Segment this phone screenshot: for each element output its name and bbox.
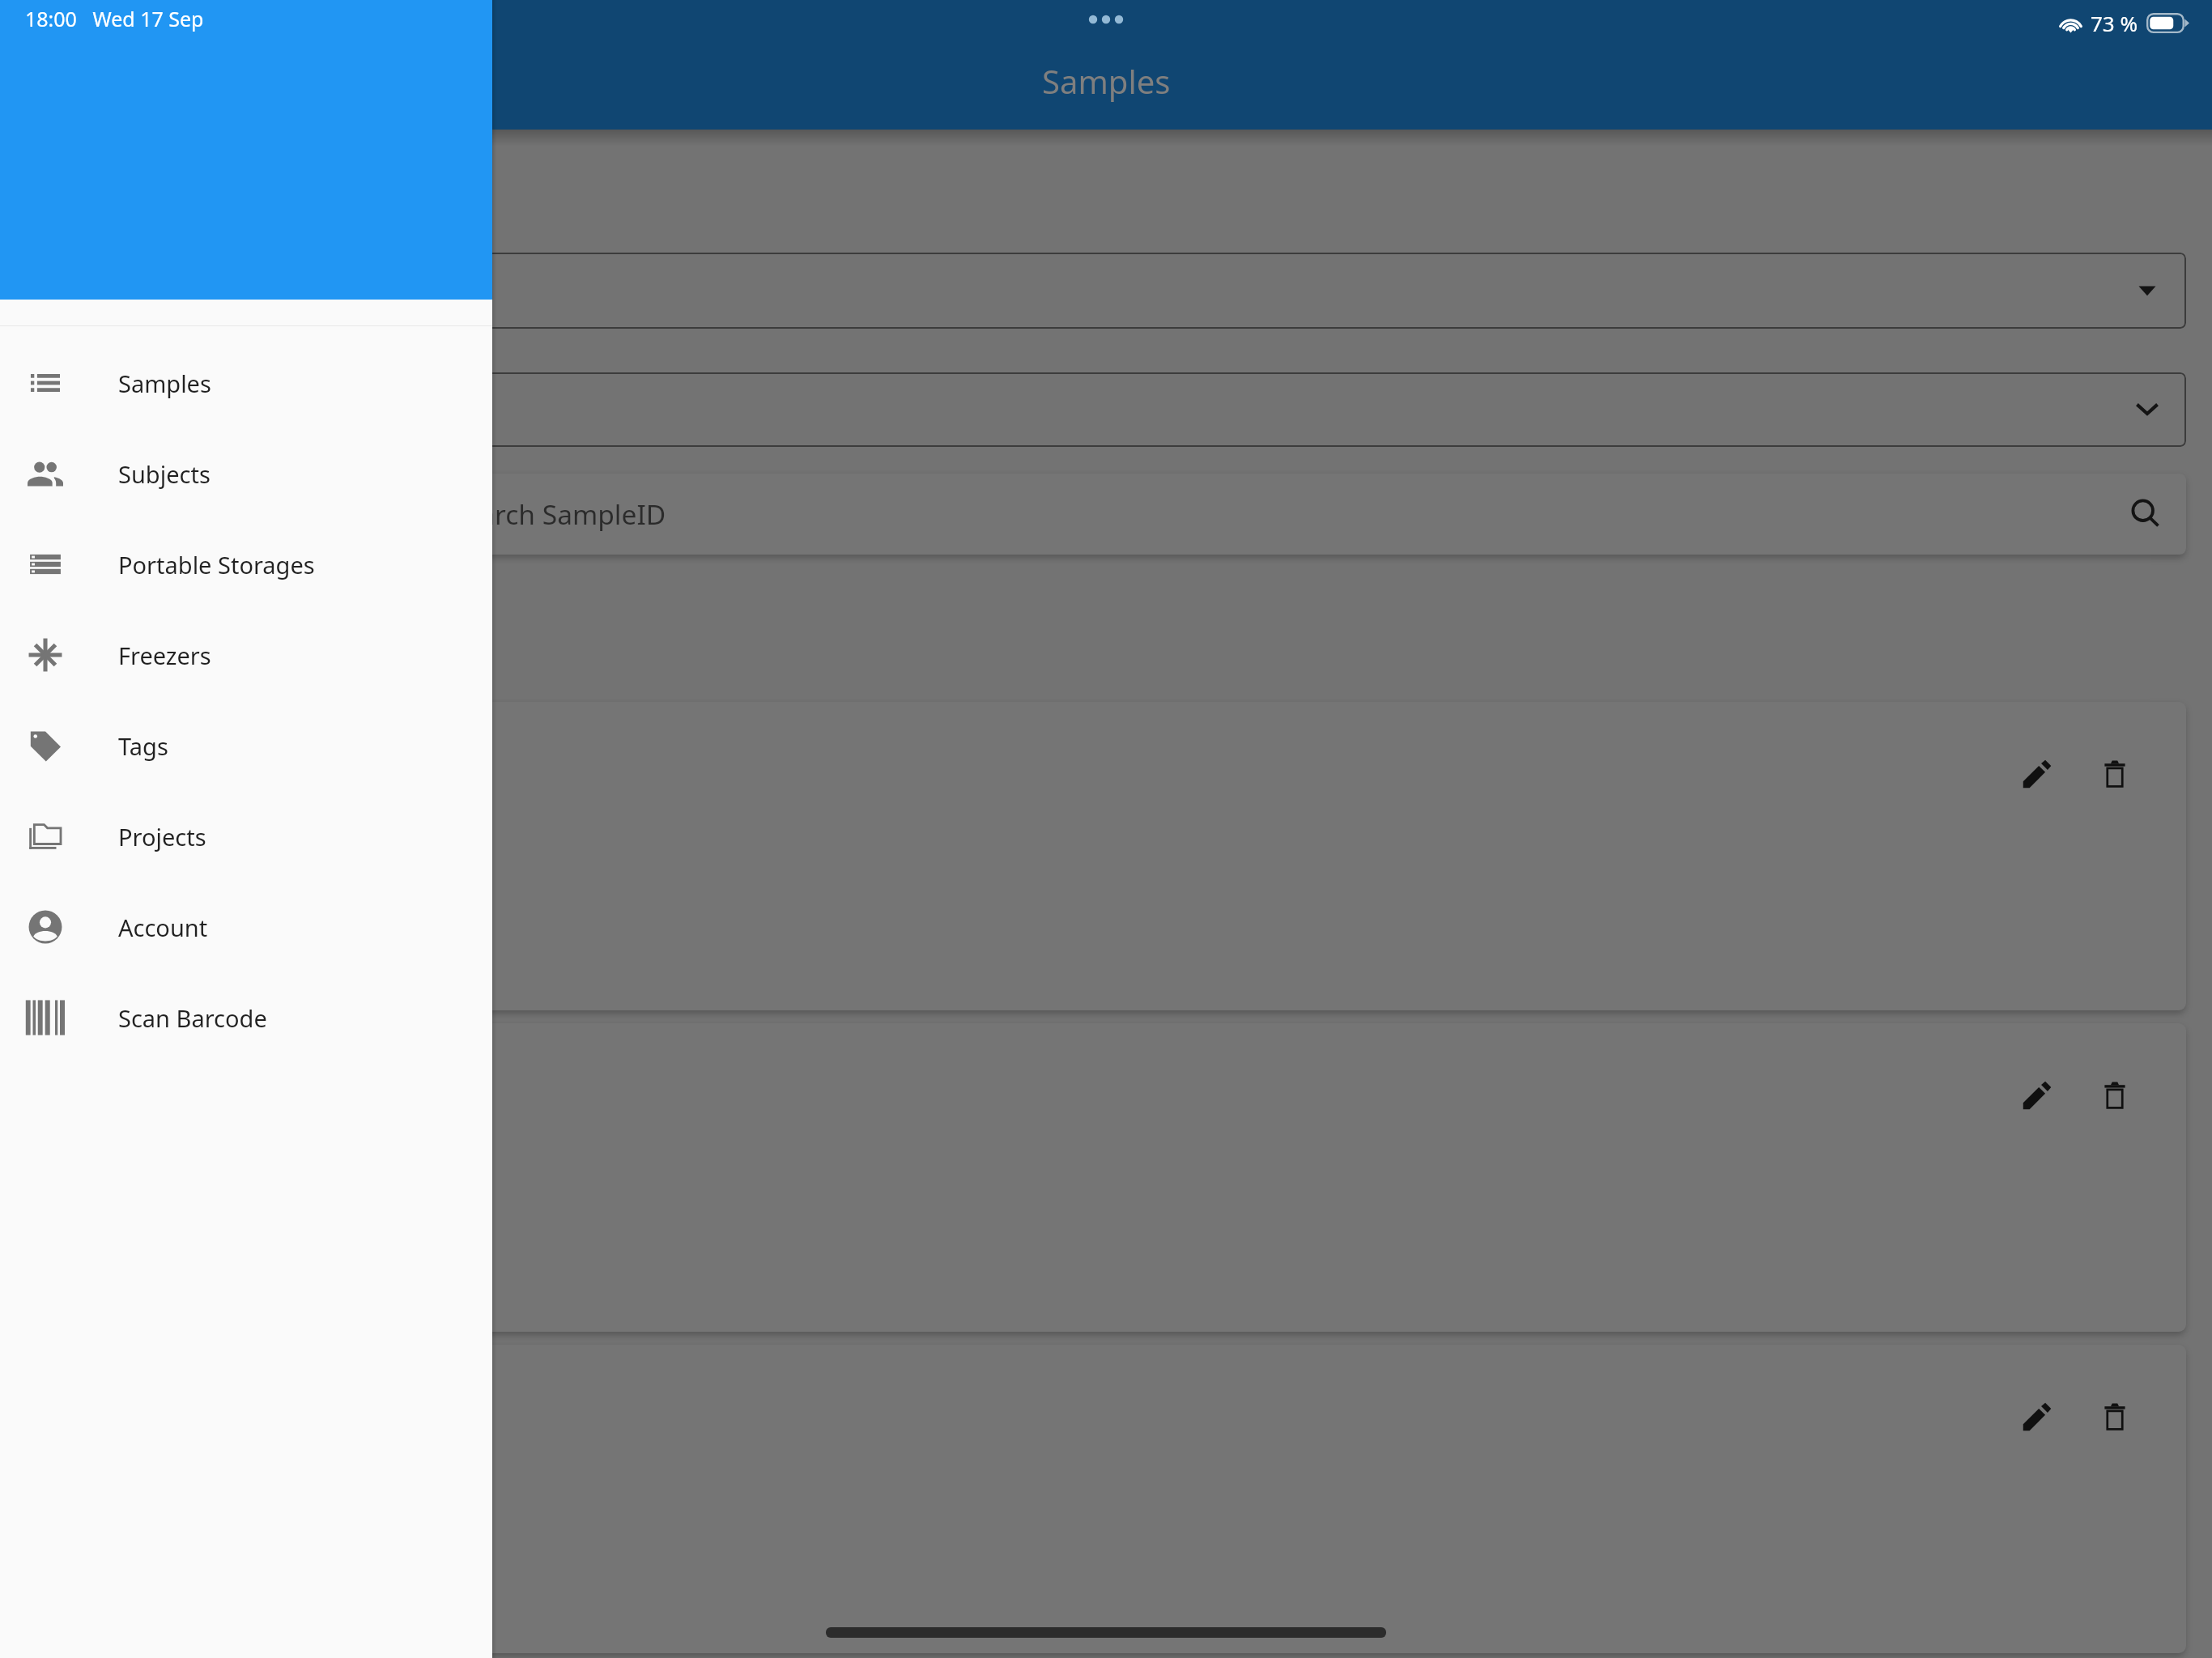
button[interactable]: Tags — [0, 700, 492, 791]
button[interactable]: Sample — [26, 702, 2186, 1010]
staticText: Subjects — [118, 458, 211, 490]
button[interactable]: Edit — [2011, 1391, 2063, 1443]
staticText: Scan Barcode — [118, 1002, 267, 1034]
button[interactable]: Portable Storages — [0, 519, 492, 610]
button[interactable]: Samples — [0, 338, 492, 428]
button[interactable]: Sample — [26, 1023, 2186, 1332]
staticText: 18:00 Wed 17 Sep — [25, 5, 204, 32]
button[interactable]: Delete — [2089, 1069, 2141, 1121]
staticText: Projects — [118, 821, 206, 852]
staticText: Tags — [118, 730, 168, 762]
button[interactable]: Select project — [26, 372, 2186, 447]
button[interactable]: Subjects — [0, 428, 492, 519]
button[interactable]: Search SampleID — [26, 474, 2186, 555]
button[interactable]: Delete — [2089, 748, 2141, 800]
button[interactable]: Edit — [2011, 748, 2063, 800]
staticText: Samples — [118, 368, 211, 399]
staticText: 73 % — [2091, 9, 2138, 37]
staticText: Portable Storages — [118, 549, 315, 580]
staticText: Freezers — [118, 640, 211, 671]
button[interactable]: Scan Barcode — [0, 972, 492, 1063]
staticText: Samples — [1042, 59, 1171, 103]
staticText: Search SampleID — [449, 495, 666, 533]
button[interactable]: Freezers — [0, 610, 492, 700]
button[interactable]: Edit — [2011, 1069, 2063, 1121]
button[interactable]: Projects — [0, 791, 492, 882]
button[interactable]: Delete — [2089, 1391, 2141, 1443]
button[interactable]: Sample — [26, 1345, 2186, 1653]
button[interactable]: Account — [0, 882, 492, 972]
button[interactable]: Select freezer — [26, 253, 2186, 329]
staticText: Account — [118, 912, 208, 943]
